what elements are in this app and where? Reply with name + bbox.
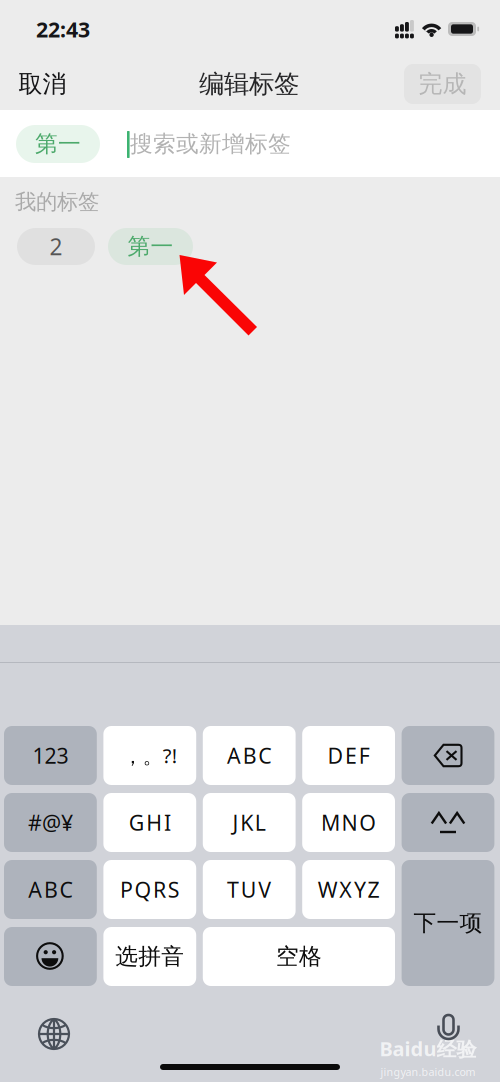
staticText: 22:43	[36, 15, 90, 43]
button[interactable]: Kaomoji	[402, 793, 494, 852]
button[interactable]: 2	[17, 228, 95, 265]
button[interactable]: 取消	[10, 58, 75, 110]
staticText: 下一项	[413, 909, 482, 937]
staticText: ABC	[28, 875, 72, 904]
button[interactable]: Dictate	[437, 1013, 460, 1042]
staticText: #@¥	[28, 808, 73, 837]
button[interactable]: MNO	[302, 793, 395, 852]
button[interactable]: TUV	[203, 860, 296, 919]
staticText: DEF	[327, 741, 370, 770]
staticText: 我的标签	[15, 189, 99, 215]
staticText: 第一	[35, 130, 81, 158]
button[interactable]: 第一	[108, 228, 193, 265]
staticText: GHI	[129, 808, 171, 837]
staticText: Baidu经验	[379, 1035, 476, 1062]
button[interactable]: WXYZ	[302, 860, 395, 919]
button[interactable]: 空格	[203, 927, 395, 986]
button[interactable]: DEF	[302, 726, 395, 785]
staticText: PQRS	[120, 875, 180, 904]
staticText: WXYZ	[318, 875, 379, 904]
staticText: 123	[32, 741, 68, 770]
button[interactable]: ，。?!	[103, 726, 196, 785]
staticText: 编辑标签	[199, 68, 299, 99]
button[interactable]: Switch keyboard	[29, 1009, 79, 1059]
button[interactable]: 下一项	[402, 860, 494, 986]
staticText: 第一	[127, 233, 173, 260]
button[interactable]: 123	[4, 726, 97, 785]
button[interactable]: ABC	[4, 860, 97, 919]
button[interactable]: PQRS	[103, 860, 196, 919]
staticText: 2	[49, 231, 62, 261]
button[interactable]: JKL	[203, 793, 296, 852]
button[interactable]: 第一	[16, 125, 100, 163]
staticText: jingyan.baidu.com	[380, 1065, 475, 1079]
staticText: 空格	[276, 943, 322, 970]
staticText: 取消	[18, 69, 66, 99]
staticText: 选拼音	[115, 943, 184, 970]
button[interactable]: GHI	[103, 793, 196, 852]
staticText: TUV	[227, 875, 271, 904]
staticText: ，。?!	[123, 742, 177, 769]
button[interactable]: Delete	[402, 726, 494, 785]
button[interactable]: 选拼音	[103, 927, 196, 986]
button[interactable]: 完成	[404, 64, 481, 104]
staticText: 完成	[418, 69, 466, 99]
staticText: JKL	[233, 808, 266, 837]
button[interactable]: #@¥	[4, 793, 97, 852]
staticText: ABC	[227, 741, 271, 770]
button[interactable]: ABC	[203, 726, 296, 785]
staticText: 搜索或新增标签	[130, 130, 291, 158]
staticText: MNO	[321, 808, 376, 837]
button[interactable]: Emoji	[4, 927, 97, 986]
